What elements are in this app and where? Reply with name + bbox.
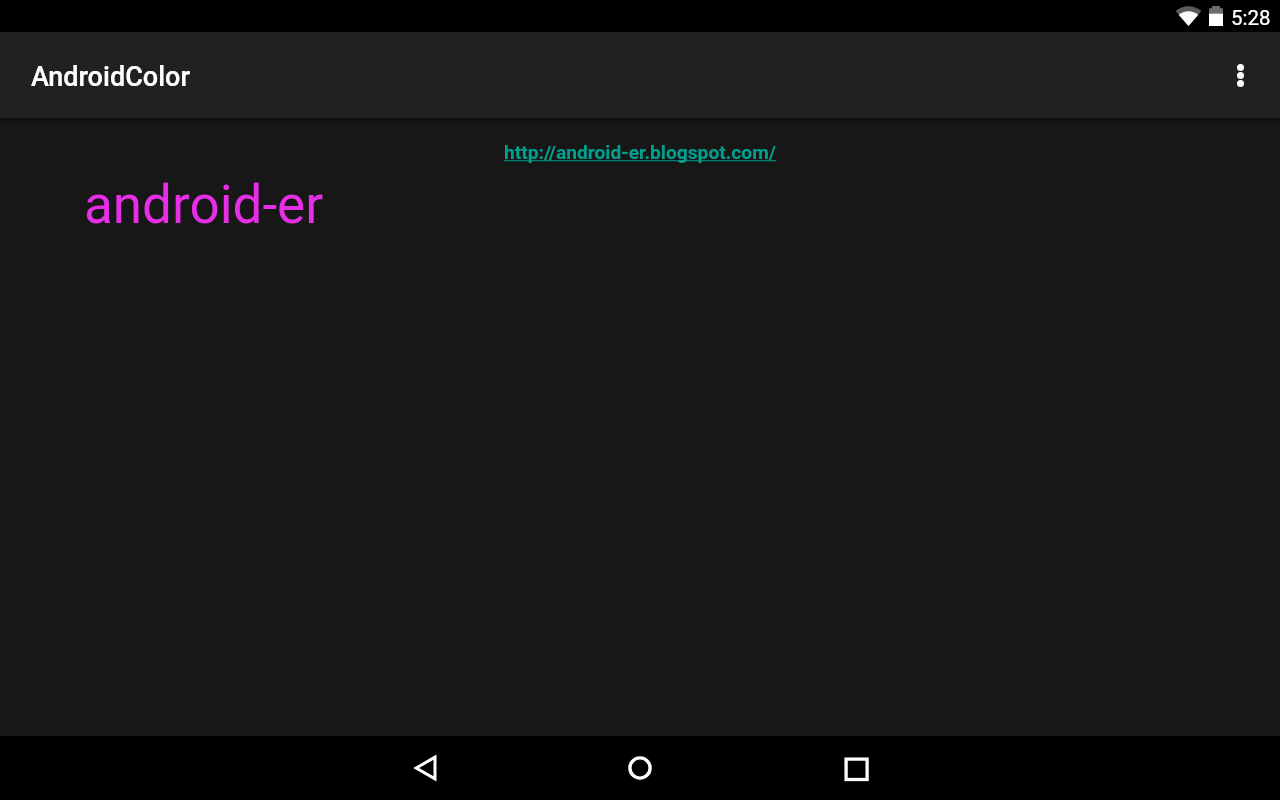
button[interactable]: Recent apps [832,745,880,793]
button[interactable]: http://android-er.blogspot.com/ [0,141,1280,164]
button[interactable]: More options [1216,51,1264,99]
staticText: android-er [84,174,324,236]
staticText: 5:28 [1231,6,1271,30]
staticText: AndroidColor [31,61,190,93]
staticText: http://android-er.blogspot.com/ [0,141,1280,164]
button[interactable]: Back [401,744,449,792]
button[interactable]: Home [616,744,664,792]
